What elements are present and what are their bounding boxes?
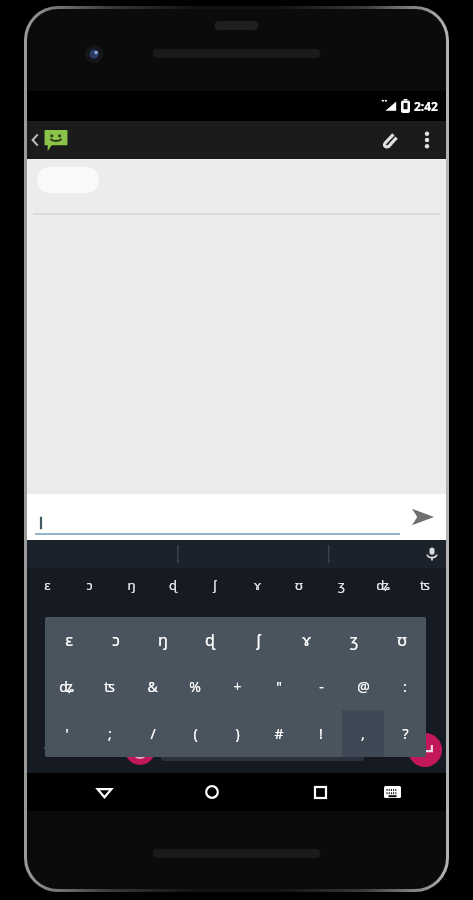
staticText: /: [150, 724, 156, 743]
staticText: ": [276, 677, 282, 696]
button[interactable]: -: [300, 663, 342, 710]
staticText: ): [235, 724, 240, 743]
button[interactable]: Attach: [370, 121, 408, 159]
button[interactable]: Back: [27, 127, 73, 153]
button[interactable]: ;: [88, 710, 131, 757]
button[interactable]: Recent apps: [284, 773, 356, 811]
staticText: ʊ: [295, 576, 303, 594]
button[interactable]: ɤ: [282, 617, 330, 663]
button[interactable]: ɛ: [45, 617, 92, 663]
button[interactable]: ɔ: [92, 617, 139, 663]
button[interactable]: ʦ: [404, 568, 446, 602]
staticText: !: [319, 724, 323, 743]
staticText: ?123: [44, 743, 68, 758]
button[interactable]: Send: [400, 494, 446, 540]
button[interactable]: ): [216, 710, 258, 757]
staticText: ʒ: [350, 629, 358, 651]
staticText: .: [387, 741, 391, 759]
staticText: ʃ: [213, 576, 217, 594]
button[interactable]: ": [258, 663, 300, 710]
button[interactable]: Voice input: [418, 540, 446, 568]
staticText: ŋ: [158, 629, 168, 651]
staticText: ɖ: [205, 629, 215, 651]
button[interactable]: ɖ: [152, 568, 194, 602]
button[interactable]: ʒ: [330, 617, 378, 663]
staticText: ɤ: [254, 576, 261, 594]
button[interactable]: Switch keyboard: [356, 773, 428, 811]
button[interactable]: (: [174, 710, 216, 757]
staticText: -: [319, 677, 324, 696]
staticText: #: [274, 724, 284, 743]
staticText: ,: [103, 741, 107, 759]
staticText: ʊ: [397, 629, 407, 651]
button[interactable]: Enter: [408, 733, 442, 767]
button[interactable]: ŋ: [110, 568, 152, 602]
button[interactable]: &: [131, 663, 174, 710]
staticText: 2:42: [414, 98, 438, 114]
button[interactable]: Space: [161, 739, 364, 761]
button[interactable]: ʊ: [378, 617, 426, 663]
button[interactable]: Emoji: [125, 735, 155, 765]
button[interactable]: @: [342, 663, 384, 710]
button[interactable]: ʃ: [234, 617, 282, 663]
staticText: ʥ: [376, 576, 390, 594]
button[interactable]: !: [300, 710, 342, 757]
staticText: %: [189, 677, 201, 696]
staticText: ʦ: [420, 576, 430, 594]
staticText: ': [65, 724, 69, 743]
staticText: ʒ: [338, 576, 345, 594]
button[interactable]: ,: [342, 710, 384, 757]
staticText: :: [403, 677, 407, 696]
button[interactable]: ?: [384, 710, 426, 757]
staticText: ʦ: [104, 677, 115, 696]
button[interactable]: ɤ: [236, 568, 278, 602]
button[interactable]: /: [131, 710, 174, 757]
button[interactable]: ʦ: [88, 663, 131, 710]
button[interactable]: .: [370, 727, 408, 773]
staticText: ɛ: [65, 629, 73, 651]
button[interactable]: ɛ: [27, 568, 68, 602]
staticText: ŋ: [127, 576, 136, 594]
staticText: ,: [361, 724, 365, 743]
staticText: +: [233, 677, 242, 696]
button[interactable]: ,: [85, 727, 125, 773]
staticText: &: [147, 677, 158, 696]
button[interactable]: #: [258, 710, 300, 757]
button[interactable]: [37, 167, 99, 193]
staticText: ;: [108, 724, 112, 743]
staticText: ʃ: [256, 629, 261, 651]
staticText: ɛ: [44, 576, 51, 594]
button[interactable]: +: [216, 663, 258, 710]
staticText: ɔ: [86, 576, 93, 594]
button[interactable]: ʊ: [278, 568, 320, 602]
staticText: ɔ: [112, 629, 120, 651]
staticText: ɖ: [169, 576, 177, 594]
staticText: ?: [402, 724, 409, 743]
button[interactable]: ɔ: [68, 568, 110, 602]
button[interactable]: Back: [69, 773, 140, 811]
button[interactable]: ʥ: [45, 663, 88, 710]
button[interactable]: ': [45, 710, 88, 757]
button[interactable]: :: [384, 663, 426, 710]
button[interactable]: [35, 509, 400, 535]
button[interactable]: ŋ: [139, 617, 186, 663]
staticText: ɤ: [302, 629, 311, 651]
button[interactable]: %: [174, 663, 216, 710]
button[interactable]: More options: [408, 121, 446, 159]
staticText: ʥ: [59, 677, 74, 696]
staticText: @: [357, 677, 370, 696]
staticText: (: [193, 724, 198, 743]
button[interactable]: Home: [176, 773, 248, 811]
button[interactable]: ɖ: [186, 617, 234, 663]
button[interactable]: ʃ: [194, 568, 236, 602]
button[interactable]: ʥ: [362, 568, 404, 602]
button[interactable]: ?123: [27, 727, 85, 773]
button[interactable]: ʒ: [320, 568, 362, 602]
